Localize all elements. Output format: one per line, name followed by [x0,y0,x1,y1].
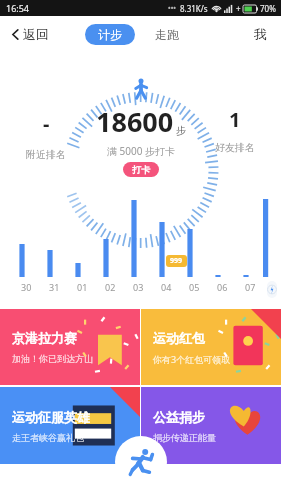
staticText: 加油！你已到达方山 [12,353,93,364]
staticText: 04 [161,281,172,293]
staticText: 18600 [96,103,174,140]
button[interactable]: 运动红包 [141,309,281,385]
staticText: 01 [77,281,88,293]
staticText: 06 [217,281,228,293]
staticText: 好友排名 [215,141,255,154]
button[interactable]: 计步 [85,24,135,45]
staticText: 计步 [98,27,122,42]
staticText: 返回 [23,26,49,42]
staticText: 捐步传递正能量 [153,432,216,443]
staticText: + [236,3,241,14]
staticText: 京港拉力赛 [12,330,77,346]
staticText: 步 [176,124,186,137]
staticText: 03 [133,281,144,293]
button[interactable]: 京港拉力赛 [0,309,140,385]
button[interactable]: 运动征服英雄 [0,387,140,464]
button[interactable]: 返回 [7,22,51,46]
staticText: 16:54 [6,2,30,14]
button[interactable]: Start running [115,436,167,488]
staticText: 05 [189,281,200,293]
staticText: ••• [168,4,176,14]
staticText: 打卡 [132,164,150,175]
staticText: 我 [254,26,267,42]
button[interactable]: Refresh [267,281,277,298]
staticText: 02 [105,281,116,293]
button[interactable]: 打卡 [123,162,159,177]
staticText: 你有3个红包可领取 [153,353,231,365]
staticText: 附近排名 [26,148,66,161]
staticText: 走王者峡谷赢礼包 [12,432,84,443]
staticText: 07 [245,281,256,293]
staticText: 999 [170,256,183,266]
staticText: - [43,110,50,137]
staticText: 30 [21,281,32,293]
staticText: 满 5000 步打卡 [107,144,176,158]
staticText: 运动征服英雄 [12,409,90,425]
button[interactable]: 走跑 [151,24,183,45]
button[interactable]: 公益捐步 [141,387,281,464]
staticText: 31 [49,281,60,293]
button[interactable]: 我 [250,22,271,46]
staticText: 运动红包 [153,330,205,346]
staticText: 8.31K/s [180,3,208,14]
staticText: 公益捐步 [153,409,205,425]
staticText: 走跑 [155,27,179,42]
staticText: 70% [260,3,276,14]
staticText: 1 [229,106,241,133]
